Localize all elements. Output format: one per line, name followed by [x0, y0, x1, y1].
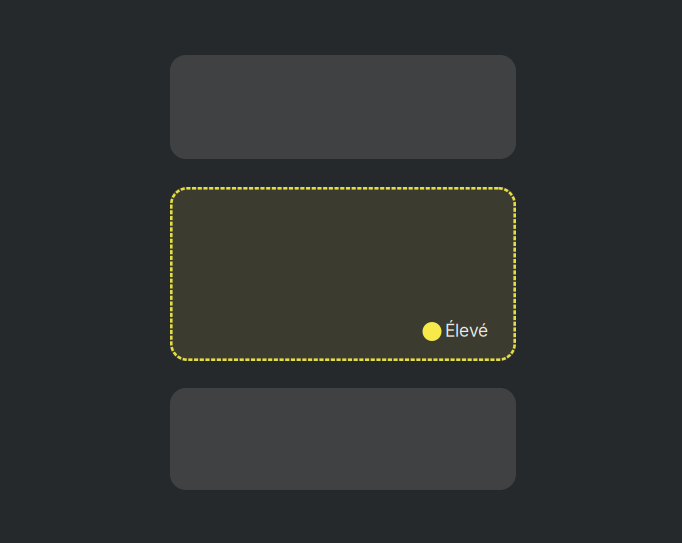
button[interactable]: Élevé [170, 187, 516, 361]
staticText: Élevé [445, 320, 488, 341]
